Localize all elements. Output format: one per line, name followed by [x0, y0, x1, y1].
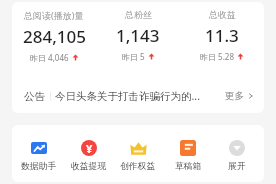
staticText: 昨日 5 — [122, 51, 145, 62]
staticText: 昨日 4,046 — [30, 52, 69, 63]
staticText: 11.3 — [205, 24, 239, 47]
staticText: 昨日 5.28 — [200, 51, 234, 62]
staticText: 284,105 — [23, 25, 86, 48]
staticText: 今日头条关于打击诈骗行为的... — [55, 89, 225, 103]
staticText: 数据助手 — [21, 161, 57, 172]
staticText: 草稿箱 — [175, 161, 202, 172]
staticText: 1,143 — [116, 24, 160, 47]
staticText: 总阅读(播放)量 — [24, 9, 84, 21]
staticText: 收益提现 — [71, 161, 107, 172]
button[interactable]: 总收益 — [180, 9, 264, 62]
button[interactable]: 创作权益 — [115, 140, 161, 172]
button[interactable]: 草稿箱 — [165, 140, 211, 172]
staticText: ¥ — [86, 141, 93, 156]
button[interactable]: 收益提现 — [66, 140, 112, 172]
staticText: 创作权益 — [120, 161, 156, 172]
button[interactable]: 公告 — [12, 81, 264, 111]
staticText: 总收益 — [209, 9, 236, 20]
staticText: 公告 — [24, 90, 45, 103]
button[interactable]: 总粉丝 — [96, 9, 180, 62]
button[interactable]: 总阅读(播放)量 — [12, 9, 96, 63]
button[interactable]: 展开 — [214, 140, 260, 172]
staticText: 总粉丝 — [125, 9, 152, 20]
staticText: 展开 — [228, 161, 246, 172]
staticText: 更多 — [225, 90, 244, 102]
button[interactable]: 数据助手 — [16, 140, 62, 172]
